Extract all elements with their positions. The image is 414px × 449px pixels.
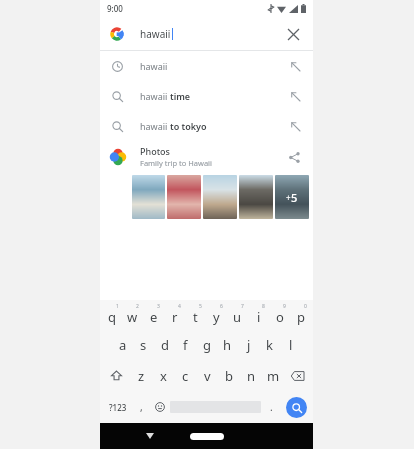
staticText: a: [119, 336, 127, 354]
button[interactable]: ,: [133, 391, 150, 423]
staticText: h: [223, 336, 232, 354]
button[interactable]: g: [196, 330, 217, 360]
staticText: 5: [199, 303, 202, 310]
staticText: 5: [291, 190, 298, 205]
staticText: x: [160, 367, 167, 385]
button[interactable]: z: [130, 360, 152, 391]
staticText: 9: [283, 303, 286, 310]
staticText: q: [108, 308, 116, 326]
button[interactable]: Search: [281, 391, 311, 423]
button[interactable]: .: [261, 391, 281, 423]
button[interactable]: 1: [102, 300, 122, 330]
button[interactable]: Photo: [203, 175, 237, 219]
button[interactable]: m: [262, 360, 284, 391]
button[interactable]: 6: [206, 300, 227, 330]
button[interactable]: Photo: [275, 175, 309, 219]
staticText: to tokyo: [170, 120, 207, 132]
button[interactable]: 0: [290, 300, 311, 330]
staticText: b: [225, 367, 233, 385]
staticText: ?123: [109, 402, 127, 413]
button[interactable]: 8: [248, 300, 269, 330]
button[interactable]: Photo: [167, 175, 201, 219]
button[interactable]: 4: [164, 300, 185, 330]
staticText: 7: [241, 303, 244, 310]
staticText: ,: [140, 400, 143, 414]
button[interactable]: Photos: [100, 145, 313, 168]
button[interactable]: k: [259, 330, 280, 360]
staticText: n: [247, 367, 256, 385]
staticText: 8: [262, 303, 265, 310]
button[interactable]: Space: [170, 391, 261, 423]
button[interactable]: Photo: [132, 175, 165, 219]
button[interactable]: v: [196, 360, 218, 391]
staticText: time: [170, 90, 191, 102]
staticText: Photos: [140, 145, 170, 157]
staticText: v: [204, 367, 211, 385]
staticText: hawaii: [140, 120, 170, 132]
staticText: +: [286, 192, 291, 203]
button[interactable]: Insert suggestion: [286, 57, 304, 75]
staticText: 1: [116, 303, 119, 310]
button[interactable]: c: [174, 360, 196, 391]
button[interactable]: Clear search: [282, 23, 304, 45]
button[interactable]: Home: [190, 433, 224, 440]
staticText: o: [276, 308, 284, 326]
staticText: e: [150, 308, 158, 326]
button[interactable]: Insert suggestion: [286, 117, 304, 135]
button[interactable]: hawaii: [100, 111, 313, 141]
button[interactable]: 5: [185, 300, 206, 330]
staticText: 4: [178, 303, 181, 310]
staticText: hawaii: [140, 90, 170, 102]
button[interactable]: Back: [140, 426, 160, 446]
staticText: hawaii: [140, 27, 171, 41]
button[interactable]: 9: [269, 300, 290, 330]
button[interactable]: n: [240, 360, 262, 391]
staticText: 2: [136, 303, 139, 310]
button[interactable]: l: [280, 330, 301, 360]
staticText: z: [138, 367, 145, 385]
button[interactable]: s: [133, 330, 154, 360]
button[interactable]: hawaii: [100, 51, 313, 81]
staticText: .: [270, 400, 273, 414]
staticText: d: [161, 336, 169, 354]
staticText: i: [257, 308, 261, 326]
staticText: w: [127, 308, 138, 326]
button[interactable]: 3: [143, 300, 164, 330]
button[interactable]: b: [218, 360, 240, 391]
button[interactable]: hawaii: [100, 81, 313, 111]
button[interactable]: f: [175, 330, 196, 360]
staticText: k: [266, 336, 273, 354]
staticText: j: [247, 336, 251, 354]
staticText: m: [267, 367, 280, 385]
staticText: y: [213, 308, 220, 326]
button[interactable]: Photo: [239, 175, 273, 219]
button[interactable]: j: [238, 330, 259, 360]
button[interactable]: Shift: [102, 360, 130, 391]
button[interactable]: x: [152, 360, 174, 391]
staticText: hawaii: [140, 60, 168, 72]
staticText: c: [182, 367, 189, 385]
staticText: l: [289, 336, 293, 354]
staticText: s: [140, 336, 147, 354]
staticText: f: [183, 336, 188, 354]
button[interactable]: 2: [122, 300, 143, 330]
staticText: 3: [157, 303, 160, 310]
staticText: p: [297, 308, 305, 326]
staticText: 0: [304, 303, 307, 310]
button[interactable]: Backspace: [284, 360, 311, 391]
button[interactable]: ?123: [102, 391, 133, 423]
button[interactable]: Insert suggestion: [286, 87, 304, 105]
button[interactable]: d: [154, 330, 175, 360]
button[interactable]: a: [112, 330, 133, 360]
button[interactable]: hawaii: [100, 17, 313, 50]
staticText: g: [203, 336, 211, 354]
staticText: u: [233, 308, 242, 326]
button[interactable]: Emoji: [150, 391, 170, 423]
staticText: r: [172, 308, 178, 326]
button[interactable]: h: [217, 330, 238, 360]
staticText: t: [193, 308, 198, 326]
button[interactable]: 7: [227, 300, 248, 330]
staticText: Family trip to Hawaii: [140, 158, 212, 168]
button[interactable]: Share: [284, 147, 304, 167]
staticText: 9:00: [107, 3, 123, 14]
